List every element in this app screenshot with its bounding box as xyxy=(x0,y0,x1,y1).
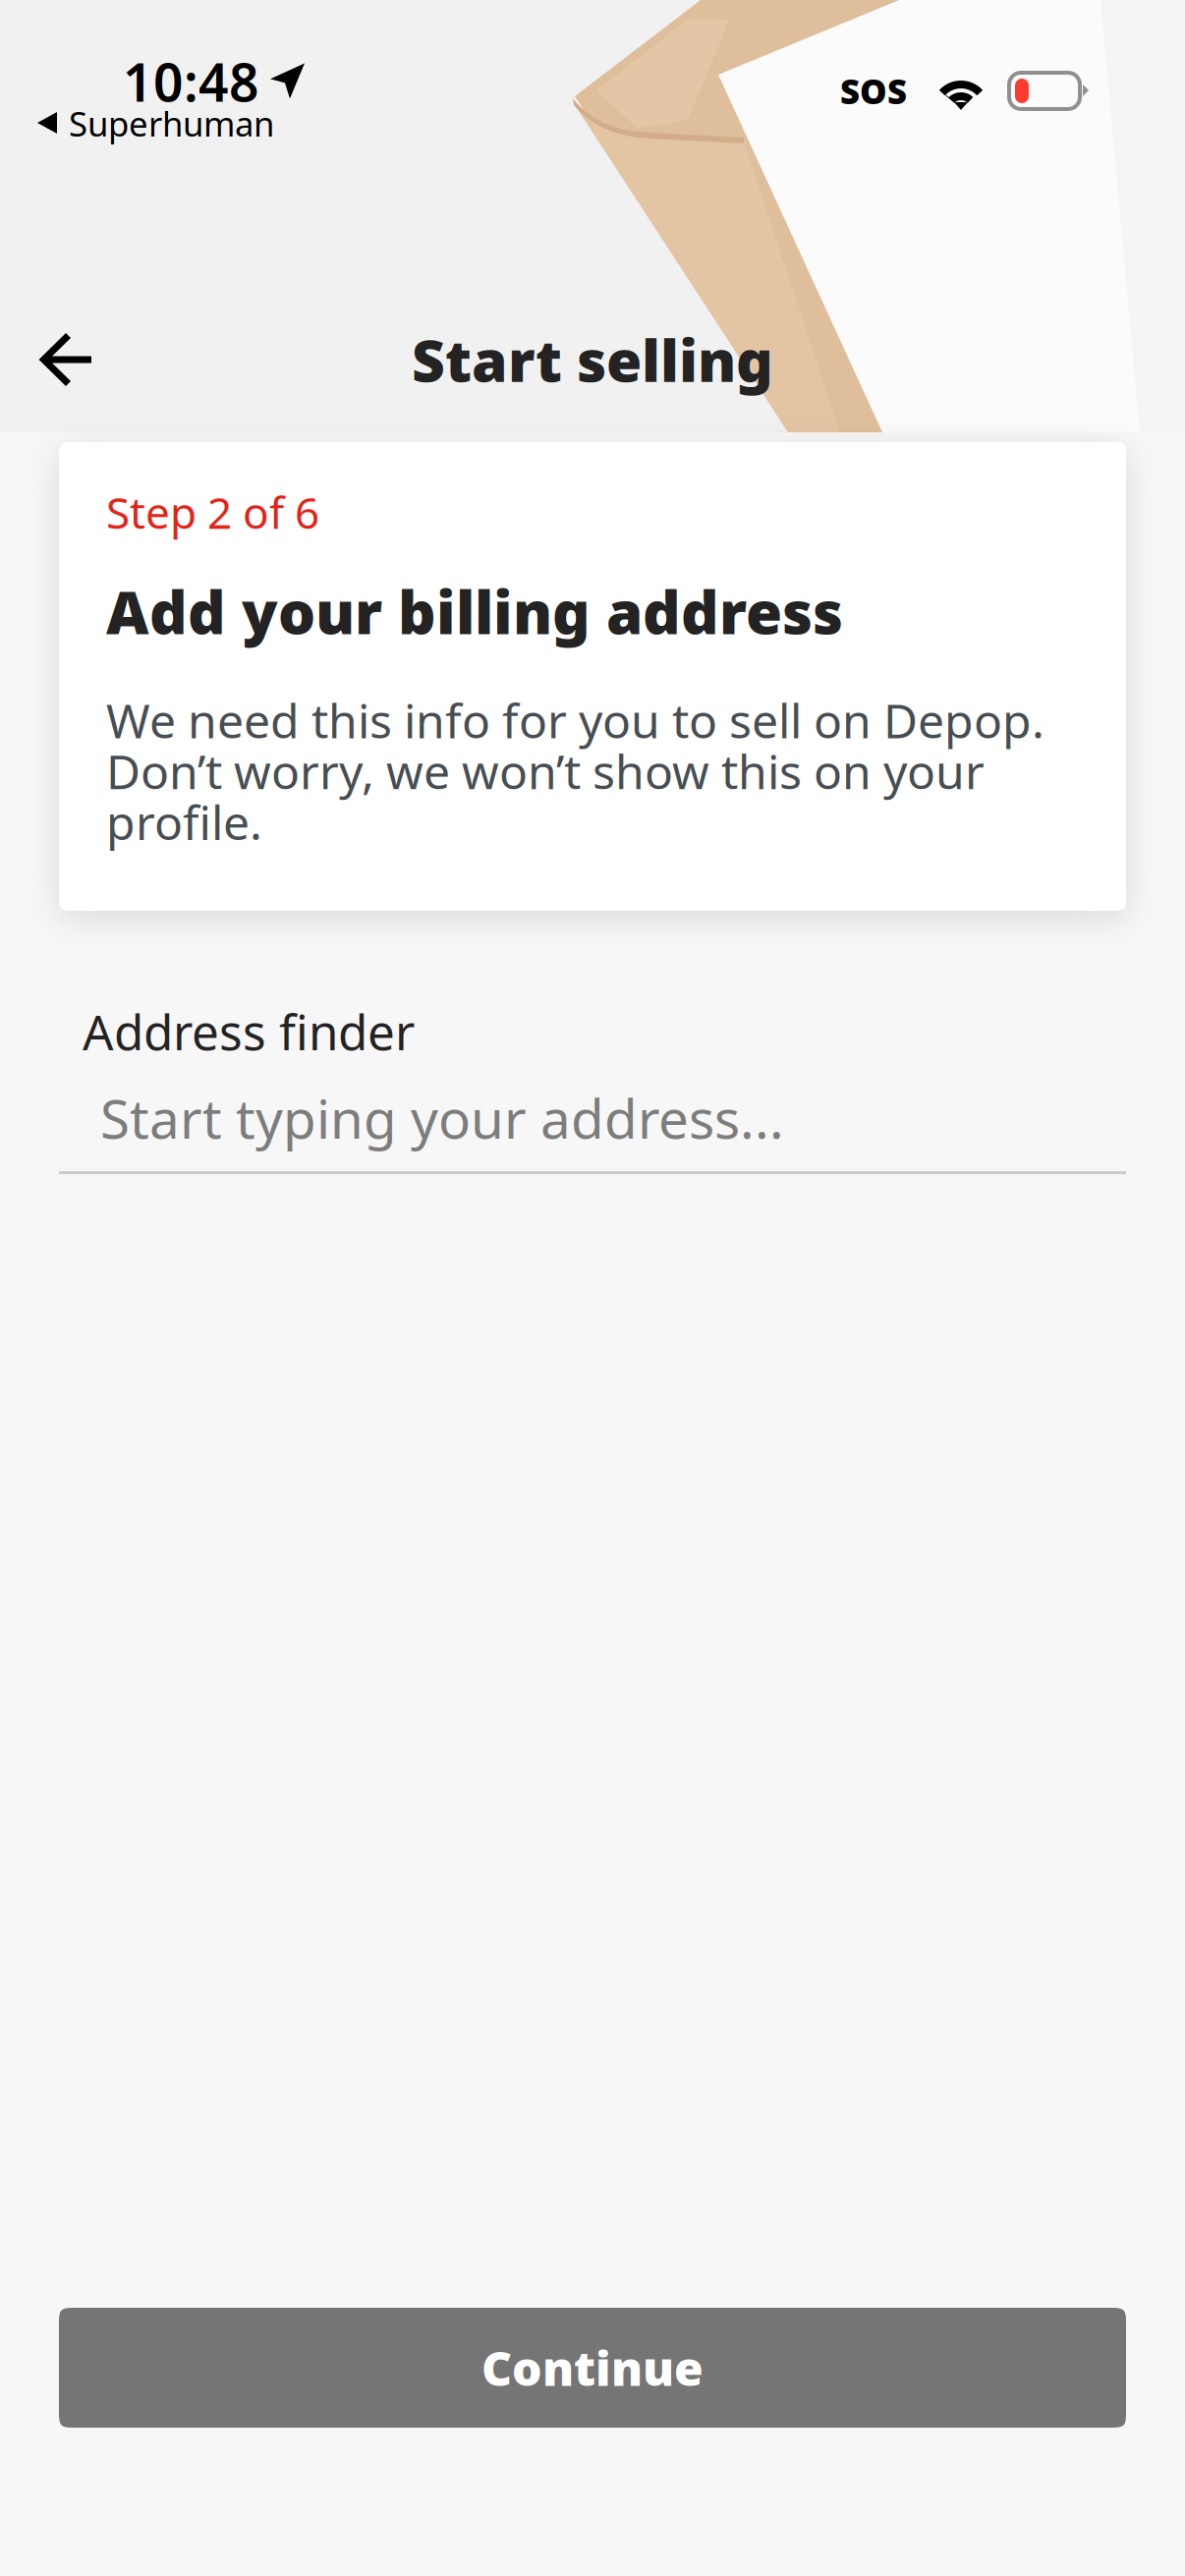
staticText: Step 2 of 6 xyxy=(106,483,319,541)
staticText: 10:48 xyxy=(123,47,259,116)
staticText: Start typing your address... xyxy=(100,1082,784,1154)
staticText: We need this info for you to sell on Dep… xyxy=(106,689,1044,853)
staticText: Address finder xyxy=(83,999,415,1064)
button[interactable]: Continue xyxy=(59,2308,1126,2428)
staticText: Start selling xyxy=(412,321,773,398)
staticText: Superhuman xyxy=(69,101,274,146)
staticText: Continue xyxy=(481,2336,704,2399)
staticText: Add your billing address xyxy=(106,572,843,650)
button[interactable]: Back xyxy=(0,305,134,415)
button[interactable]: Address finder xyxy=(59,999,1126,1174)
staticText: SOS xyxy=(840,68,907,113)
